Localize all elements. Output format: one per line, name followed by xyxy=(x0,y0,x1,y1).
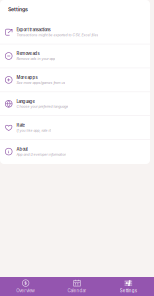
staticText: Language xyxy=(16,99,34,104)
button[interactable]: More apps xyxy=(0,68,150,92)
staticText: Remove ads in your app xyxy=(16,57,55,61)
staticText: Remove ads xyxy=(16,51,39,56)
button[interactable]: About xyxy=(0,140,150,163)
staticText: See more apps/games from us xyxy=(16,81,65,85)
staticText: Overview xyxy=(16,288,35,293)
button[interactable]: Overview xyxy=(0,280,51,293)
staticText: Choose your preferred language xyxy=(16,104,68,109)
button[interactable]: Rate xyxy=(0,116,150,139)
staticText: Settings xyxy=(8,6,28,12)
staticText: Settings xyxy=(120,288,137,293)
staticText: About xyxy=(16,147,27,152)
staticText: Transactions might be exported to CSV, E… xyxy=(16,33,98,37)
staticText: If you like app, rate it! xyxy=(16,128,51,133)
button[interactable]: Language xyxy=(0,92,150,115)
button[interactable]: Export transactions xyxy=(0,20,150,44)
staticText: Calendar xyxy=(67,288,86,293)
button[interactable]: Calendar xyxy=(51,280,103,293)
staticText: Rate xyxy=(16,123,24,128)
button[interactable]: Remove ads xyxy=(0,44,150,68)
button[interactable]: Settings xyxy=(103,280,154,293)
staticText: App and Developer information xyxy=(16,152,66,156)
staticText: More apps xyxy=(16,75,37,80)
staticText: Export transactions xyxy=(16,27,50,32)
